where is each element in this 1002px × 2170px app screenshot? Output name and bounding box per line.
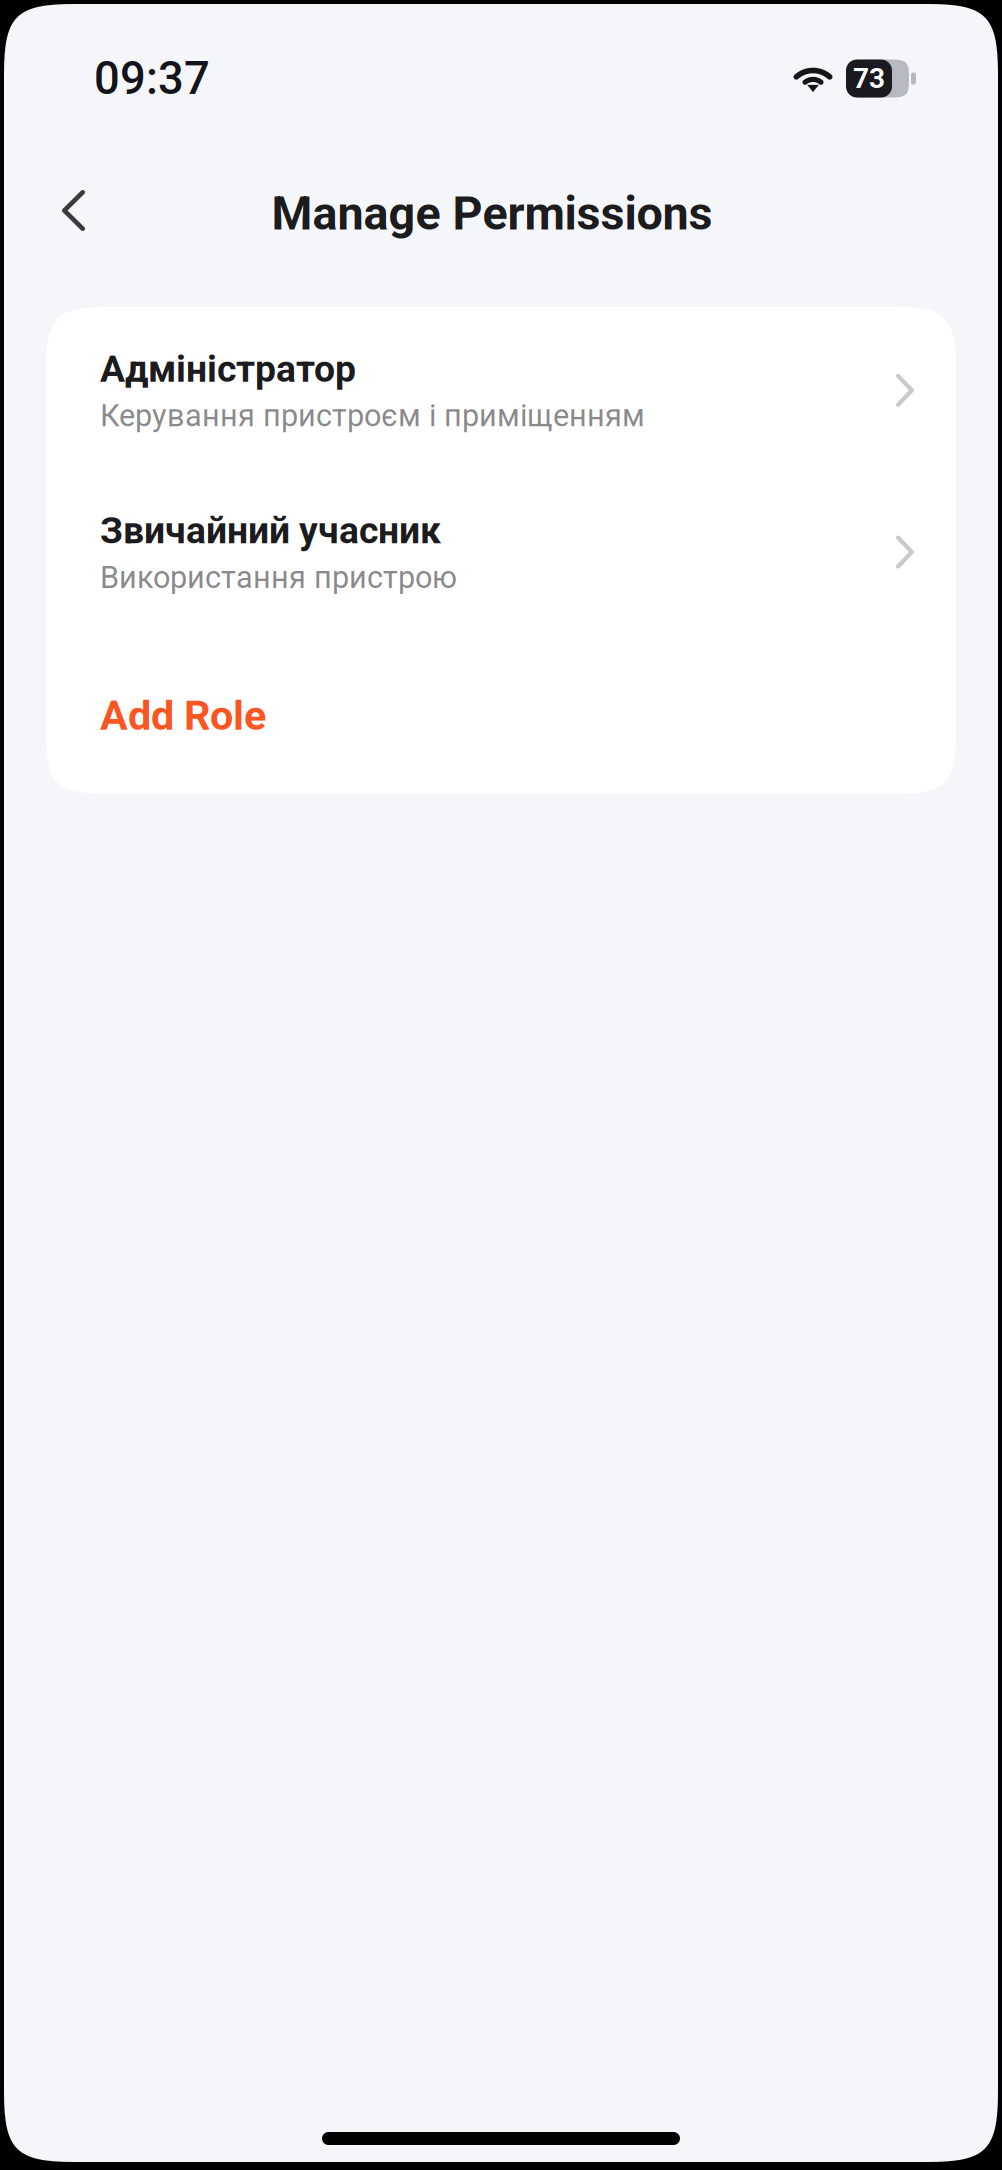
staticText: Адміністратор <box>100 347 356 391</box>
button[interactable]: Back <box>4 148 143 257</box>
button[interactable]: Звичайний учасник <box>46 434 956 595</box>
staticText: Використання пристрою <box>100 559 457 595</box>
staticText: Керування пристроєм і приміщенням <box>100 398 645 434</box>
staticText: 73 <box>853 62 885 95</box>
staticText: Add Role <box>100 691 266 740</box>
button[interactable]: Add Role <box>46 595 320 794</box>
button[interactable]: Адміністратор <box>46 307 956 434</box>
staticText: Manage Permissions <box>271 186 712 241</box>
staticText: Звичайний учасник <box>100 509 441 552</box>
staticText: 09:37 <box>94 52 210 105</box>
